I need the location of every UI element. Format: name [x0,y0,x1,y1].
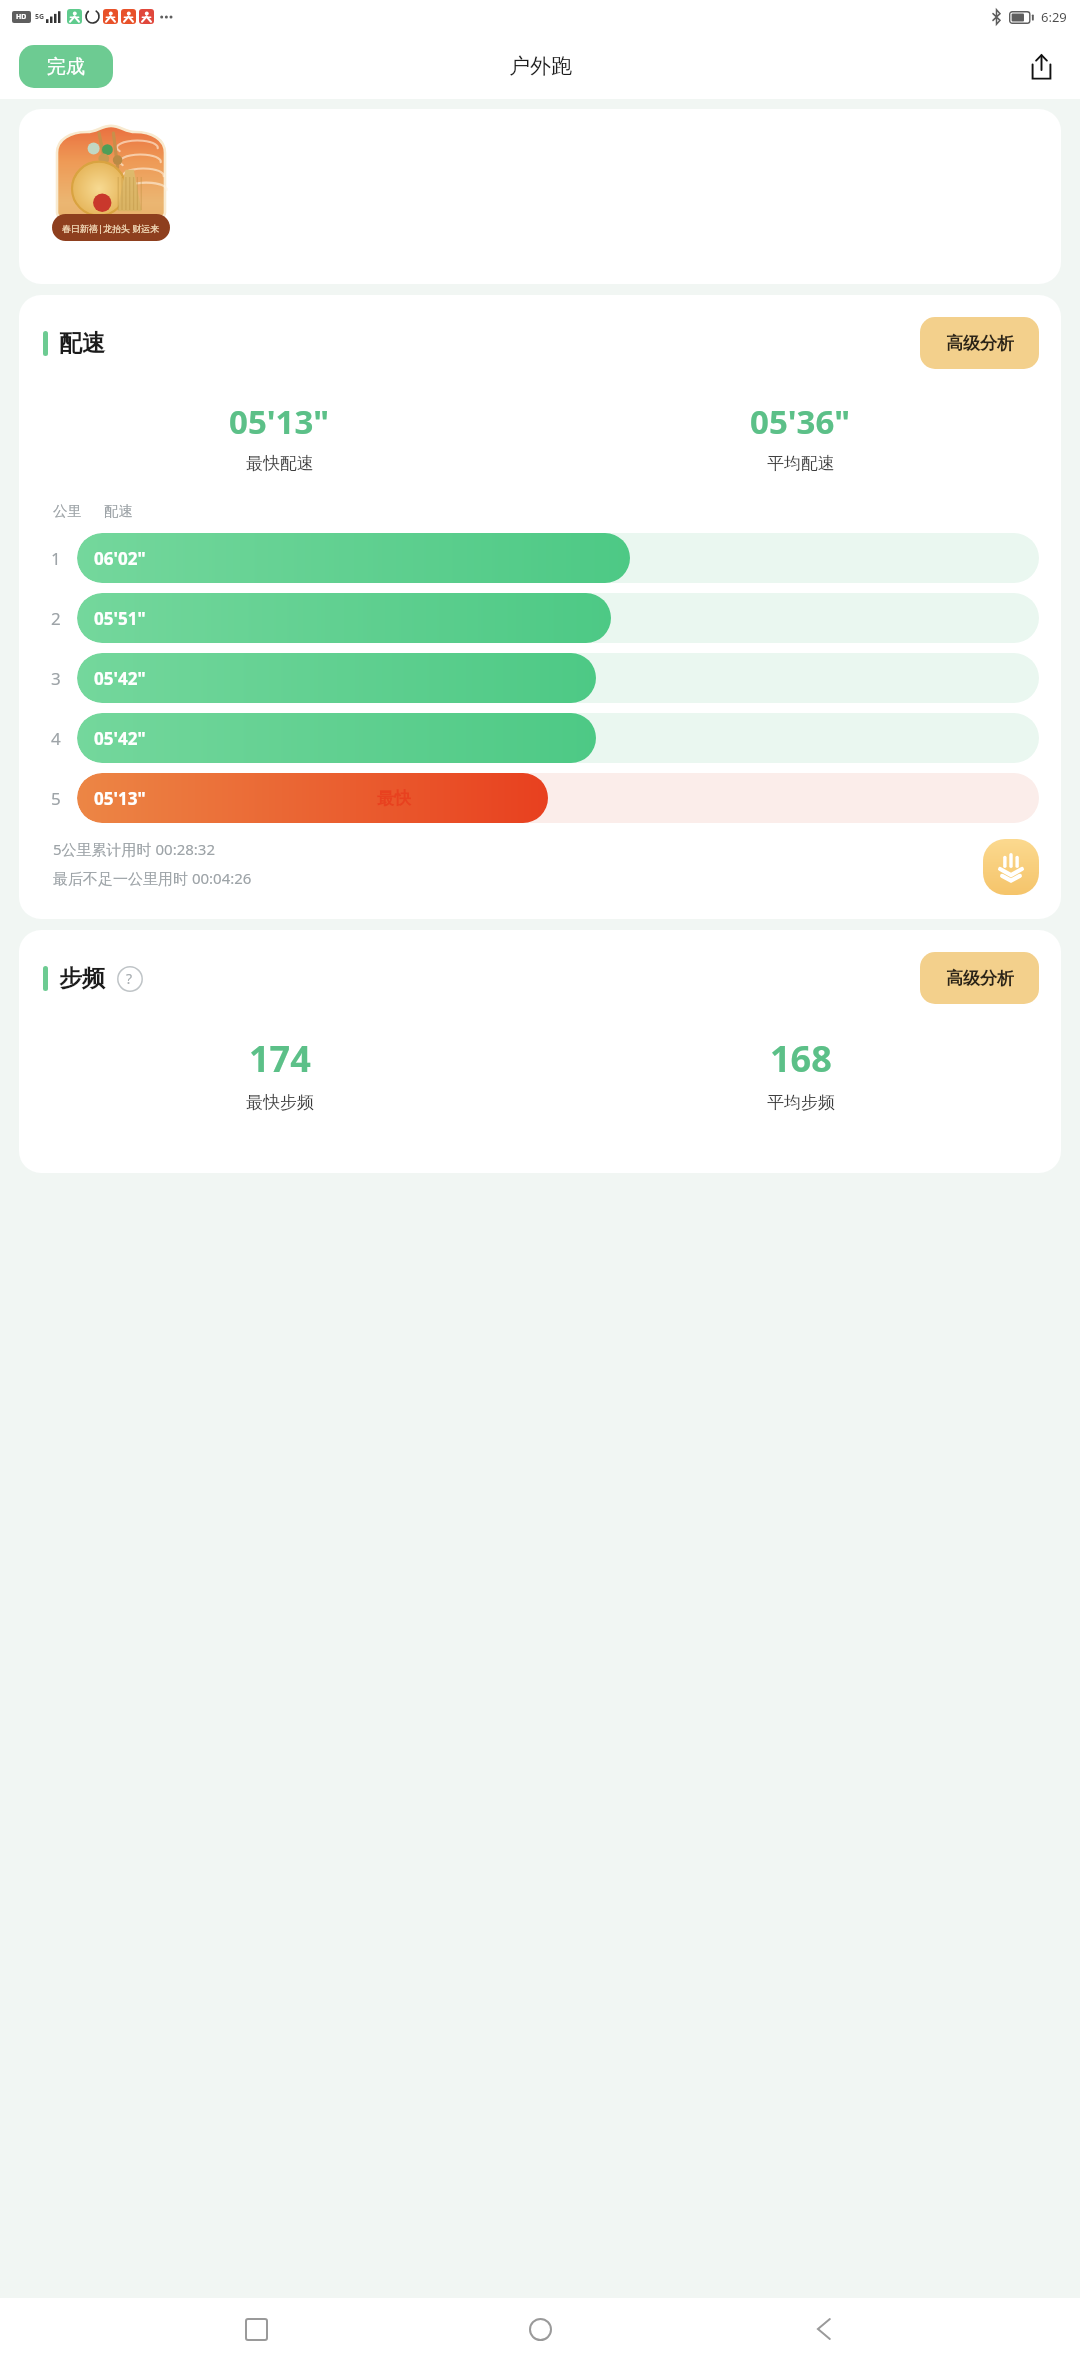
staticText: 05'36" [750,399,851,444]
staticText: 最快步频 [246,1092,314,1113]
staticText: 完成 [47,55,85,79]
button[interactable]: 高级分析 [920,952,1039,1004]
staticText: 平均配速 [767,453,835,474]
button[interactable]: 步频 [19,930,1061,1173]
button[interactable]: 完成 [19,45,113,88]
staticText: 最快配速 [246,453,314,474]
staticText: 平均步频 [767,1092,835,1113]
staticText: 06'02" [94,547,146,570]
staticText: 05'42" [94,727,146,750]
staticText: 步频 [59,964,105,993]
staticText: 春日新禧|龙抬头 财运来 [62,222,160,234]
button[interactable]: Help [116,965,143,992]
staticText: 配速 [59,329,105,358]
staticText: 配速 [104,502,133,520]
staticText: 户外跑 [509,53,572,79]
staticText: 5公里累计用时 00:28:32 [53,839,216,859]
staticText: 05'51" [94,607,146,630]
staticText: HD [16,12,27,22]
staticText: 4 [51,727,61,750]
staticText: 5 [51,787,61,810]
button[interactable]: Home [511,2300,569,2358]
button[interactable]: Share [1020,45,1062,87]
staticText: 最后不足一公里用时 00:04:26 [53,868,252,888]
staticText: 05'13" [229,399,330,444]
staticText: 2 [51,607,61,630]
button[interactable]: Trend [983,839,1039,895]
button[interactable]: 春日新禧|龙抬头 财运来 [19,109,1061,284]
button[interactable]: 配速 [19,295,1061,919]
button[interactable]: 高级分析 [920,317,1039,369]
staticText: 05'42" [94,667,146,690]
staticText: 05'13" [94,787,146,810]
staticText: 公里 [53,502,82,520]
staticText: 5G [35,12,45,22]
staticText: 最快 [377,788,411,809]
staticText: 3 [51,667,61,690]
staticText: 高级分析 [946,968,1014,989]
staticText: 1 [51,547,61,570]
staticText: 高级分析 [946,333,1014,354]
staticText: 174 [249,1034,311,1083]
staticText: 168 [770,1034,832,1083]
staticText: ? [126,969,133,988]
button[interactable]: Recents [227,2300,285,2358]
staticText: 6:29 [1041,8,1067,26]
button[interactable]: Back [796,2300,854,2358]
